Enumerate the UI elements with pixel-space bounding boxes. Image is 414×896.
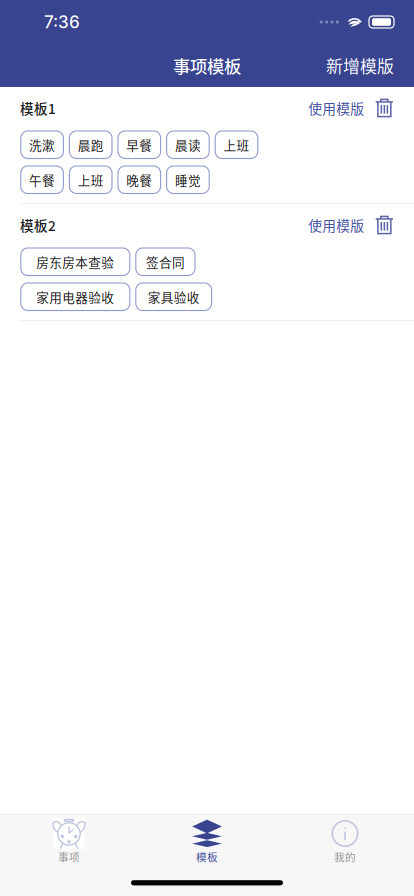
staticText: 签合同 [146, 253, 185, 271]
staticText: 晨读 [175, 136, 201, 154]
staticText: 7:36 [44, 12, 80, 32]
button[interactable]: 上班 [215, 131, 258, 158]
button[interactable]: 家用电器验收 [21, 283, 130, 310]
staticText: 家用电器验收 [36, 288, 114, 306]
staticText: 新增模版 [326, 53, 394, 78]
staticText: 使用模版 [308, 98, 364, 118]
staticText: 模板 [196, 849, 218, 864]
staticText: 午餐 [29, 171, 55, 189]
button[interactable]: 早餐 [118, 131, 161, 158]
button[interactable]: 睡觉 [167, 166, 209, 193]
staticText: 使用模版 [308, 215, 364, 235]
button[interactable]: 午餐 [21, 166, 63, 193]
button[interactable]: 签合同 [136, 248, 195, 275]
button[interactable]: 洗漱 [21, 131, 63, 158]
staticText: 早餐 [126, 136, 152, 154]
button[interactable]: 晨读 [167, 131, 209, 158]
button[interactable]: 房东房本查验 [21, 248, 130, 275]
staticText: 我的 [334, 849, 356, 864]
staticText: 晨跑 [78, 136, 104, 154]
staticText: 家具验收 [148, 288, 200, 306]
staticText: 模板1 [20, 98, 56, 118]
button[interactable]: 事项 [0, 815, 138, 866]
button[interactable]: Delete template [364, 93, 393, 123]
staticText: 事项模板 [173, 53, 241, 78]
staticText: 模板2 [20, 215, 56, 235]
button[interactable]: 使用模版 [308, 92, 364, 124]
button[interactable]: 模板 [138, 815, 276, 866]
staticText: 睡觉 [175, 171, 201, 189]
staticText: 事项 [58, 849, 80, 864]
button[interactable]: 家具验收 [136, 283, 212, 310]
button[interactable]: Delete template [364, 210, 393, 240]
button[interactable]: 晨跑 [69, 131, 112, 158]
button[interactable]: 使用模版 [308, 209, 364, 241]
staticText: 上班 [78, 171, 104, 189]
button[interactable]: 新增模版 [316, 46, 404, 85]
button[interactable]: 上班 [69, 166, 112, 193]
button[interactable]: 我的 [276, 815, 414, 866]
staticText: 上班 [223, 136, 249, 154]
button[interactable]: 晚餐 [118, 166, 161, 193]
staticText: 房东房本查验 [36, 253, 114, 271]
staticText: 晚餐 [126, 171, 152, 189]
staticText: 洗漱 [29, 136, 55, 154]
